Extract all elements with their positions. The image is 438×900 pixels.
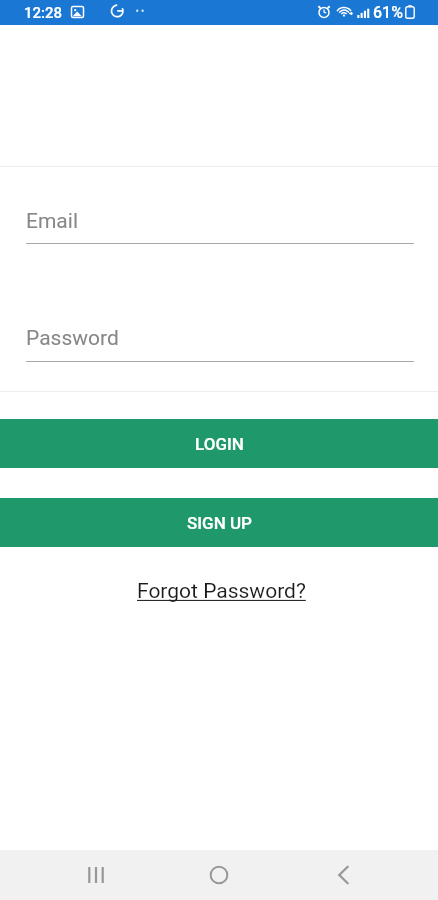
- button[interactable]: SIGN UP: [0, 498, 438, 547]
- button[interactable]: Home: [195, 850, 242, 900]
- button[interactable]: LOGIN: [0, 419, 438, 468]
- button[interactable]: Forgot Password?: [137, 579, 306, 604]
- staticText: Email: [26, 209, 78, 234]
- staticText: SIGN UP: [187, 513, 252, 533]
- button[interactable]: Recent apps: [72, 850, 119, 900]
- staticText: 12:28: [24, 4, 63, 22]
- button[interactable]: Back: [319, 850, 366, 900]
- staticText: Password: [26, 326, 119, 351]
- staticText: LOGIN: [195, 434, 244, 454]
- staticText: 61%: [373, 3, 403, 22]
